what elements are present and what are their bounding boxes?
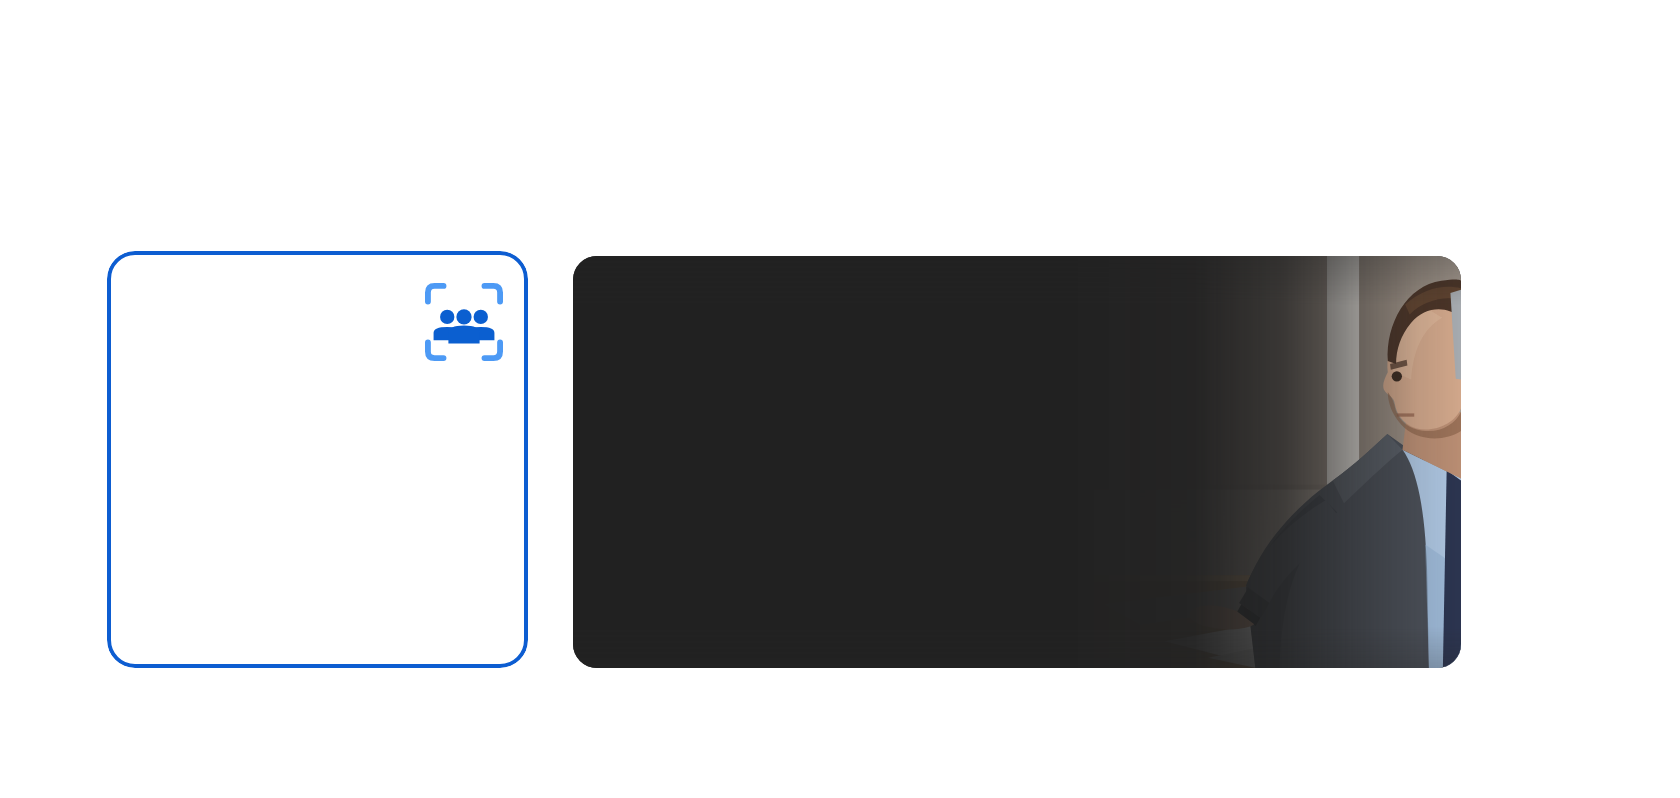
button[interactable]: [573, 256, 1461, 668]
button[interactable]: Scan group of people: [107, 251, 528, 668]
button[interactable]: Scan group of people: [425, 283, 503, 361]
